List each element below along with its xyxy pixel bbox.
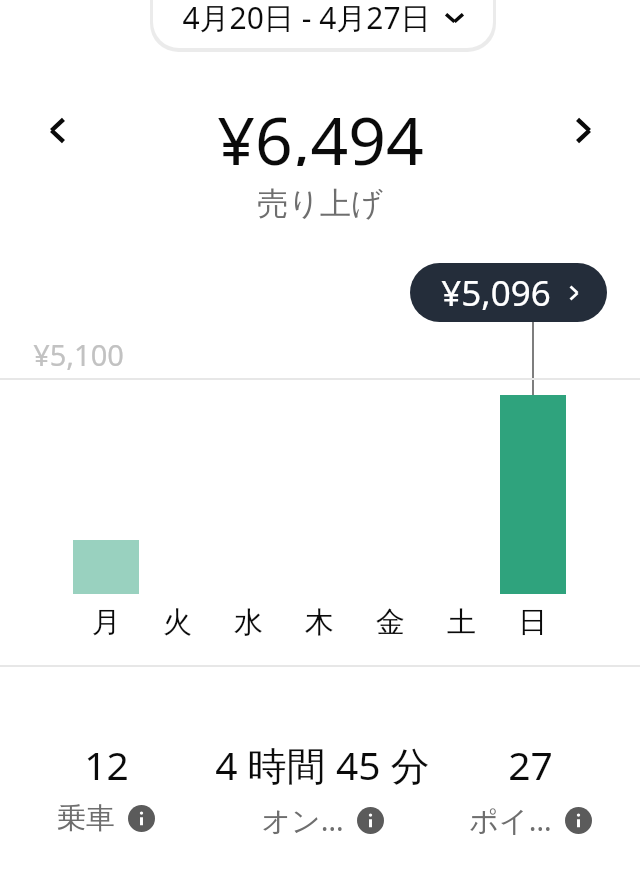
button[interactable]: 12: [0, 738, 221, 837]
staticText: 売り上げ: [257, 184, 383, 223]
staticText: 12: [84, 738, 129, 791]
staticText: 日: [518, 604, 547, 641]
staticText: ¥5,100: [33, 335, 124, 374]
button[interactable]: 土: [433, 601, 489, 643]
button[interactable]: 日: [504, 601, 560, 643]
staticText: 4月20日 - 4月27日: [182, 0, 431, 38]
staticText: 水: [234, 604, 263, 641]
button[interactable]: More info: [565, 807, 592, 834]
button[interactable]: 金: [362, 601, 418, 643]
staticText: 土: [447, 604, 476, 641]
staticText: オン…: [261, 800, 344, 840]
button[interactable]: 月: [78, 601, 134, 643]
staticText: 火: [163, 604, 192, 641]
staticText: ¥5,096: [441, 269, 551, 317]
button[interactable]: More info: [357, 807, 384, 834]
button[interactable]: 4月20日 - 4月27日: [153, 0, 493, 48]
button[interactable]: 火: [149, 601, 205, 643]
staticText: ポイ…: [469, 800, 552, 840]
staticText: ¥6,494: [217, 94, 424, 166]
staticText: 27: [508, 738, 553, 791]
staticText: 木: [305, 604, 334, 641]
button[interactable]: Next week: [550, 97, 616, 163]
button[interactable]: 木: [291, 601, 347, 643]
button[interactable]: ¥5,096: [410, 263, 607, 322]
staticText: 乗車: [57, 800, 115, 837]
staticText: 金: [376, 604, 405, 641]
button[interactable]: 水: [220, 601, 276, 643]
button[interactable]: 27: [415, 738, 640, 840]
staticText: 4 時間 45 分: [215, 738, 430, 791]
button[interactable]: 4 時間 45 分: [207, 738, 437, 840]
staticText: 月: [92, 604, 121, 641]
button[interactable]: More info: [128, 805, 155, 832]
button[interactable]: Previous week: [24, 97, 90, 163]
